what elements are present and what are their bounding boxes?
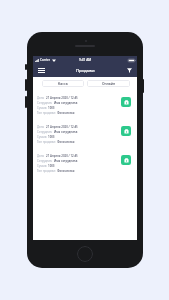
button[interactable]: Касса — [42, 80, 84, 87]
staticText: Физическая — [57, 111, 75, 115]
button[interactable]: Дата: — [33, 148, 137, 177]
staticText: Дата: — [37, 125, 46, 129]
staticText: Онлайн — [102, 81, 116, 86]
button[interactable]: Filter — [121, 64, 137, 77]
staticText: Сумма: — [37, 164, 48, 168]
staticText: 21 Апреля 2020 / 12:45 — [46, 125, 78, 129]
button[interactable]: Дата: — [33, 90, 137, 119]
staticText: Сотрудник: — [37, 159, 54, 163]
staticText: Дата: — [37, 96, 46, 100]
staticText: Сотрудник: — [37, 130, 54, 134]
button[interactable]: Дата: — [33, 119, 137, 148]
button[interactable]: Онлайн — [87, 80, 130, 87]
button[interactable]: Menu — [33, 64, 49, 77]
staticText: Имя сотрудника — [54, 159, 78, 163]
staticText: Касса — [58, 81, 68, 86]
staticText: Дата: — [37, 154, 46, 158]
button[interactable]: Print receipt — [121, 126, 131, 136]
staticText: Физическая — [57, 169, 75, 173]
button[interactable]: Print receipt — [121, 155, 131, 165]
staticText: Сотрудник: — [37, 101, 54, 105]
staticText: 100$ — [48, 164, 55, 168]
staticText: 21 Апреля 2020 / 12:45 — [46, 154, 78, 158]
staticText: Carrier — [40, 58, 51, 62]
staticText: Тип продажи: — [37, 169, 57, 173]
staticText: Тип продажи: — [37, 140, 57, 144]
staticText: Продажи — [76, 68, 95, 74]
staticText: Имя сотрудника — [54, 130, 78, 134]
staticText: 100$ — [48, 106, 55, 110]
staticText: 100$ — [48, 135, 55, 139]
staticText: 9:41 AM — [79, 58, 92, 62]
staticText: 21 Апреля 2020 / 12:45 — [46, 96, 78, 100]
staticText: Сумма: — [37, 106, 48, 110]
staticText: Физическая — [57, 140, 75, 144]
staticText: Сумма: — [37, 135, 48, 139]
staticText: Тип продажи: — [37, 111, 57, 115]
staticText: Имя сотрудника — [54, 101, 78, 105]
button[interactable]: Print receipt — [121, 97, 131, 107]
